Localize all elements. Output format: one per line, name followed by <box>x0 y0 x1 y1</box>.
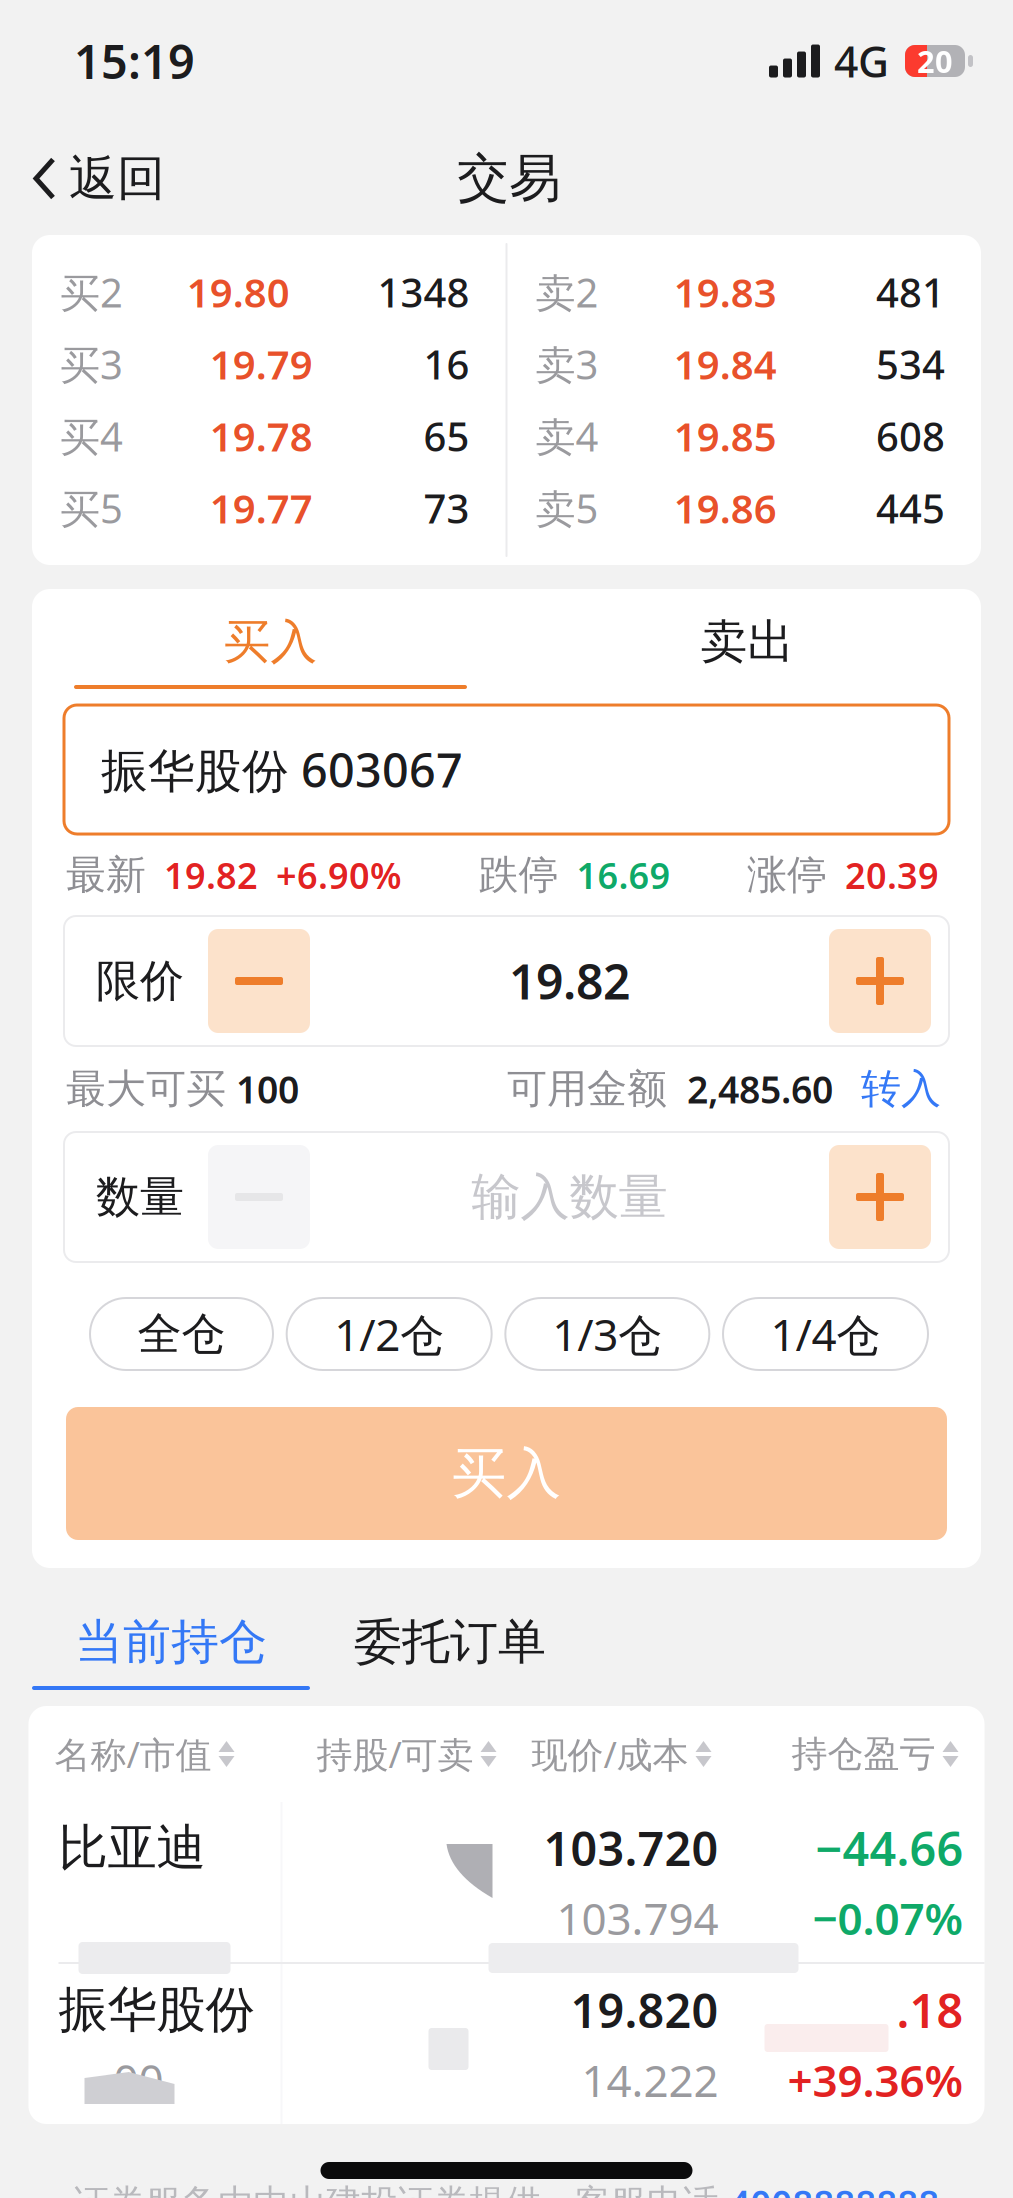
staticText: 103.794 <box>556 1889 718 1947</box>
staticText: 19.84 <box>674 337 777 390</box>
staticText: 20.39 <box>827 851 939 899</box>
staticText: 19.79 <box>210 337 313 390</box>
staticText: 481 <box>876 265 945 318</box>
staticText: +39.36% <box>787 2051 963 2109</box>
button[interactable]: 买入 <box>54 613 487 689</box>
staticText: 4G <box>834 33 889 89</box>
staticText: 20 <box>917 41 953 81</box>
staticText: 卖4 <box>535 409 598 462</box>
button[interactable]: 转入 <box>833 1064 941 1113</box>
staticText <box>501 1889 512 1947</box>
staticText: 100 <box>226 1064 299 1114</box>
staticText: 103.720 <box>543 1817 718 1879</box>
staticText: 19.86 <box>674 481 777 534</box>
staticText: 4008888888 <box>729 2179 939 2198</box>
staticText: 608 <box>876 409 945 462</box>
staticText: 1348 <box>377 265 469 318</box>
button[interactable]: 1/4仓 <box>723 1298 928 1370</box>
staticText: 19.83 <box>674 265 777 318</box>
staticText: 73 <box>423 481 469 534</box>
staticText: 输入数量 <box>471 1167 667 1227</box>
staticText: 卖2 <box>535 265 598 318</box>
staticText: 可用金额 <box>507 1064 667 1113</box>
staticText: 00 <box>113 2050 163 2108</box>
staticText: 19.85 <box>674 409 777 462</box>
staticText: 买4 <box>60 409 123 462</box>
staticText: 数量 <box>96 1170 184 1224</box>
staticText: 19.78 <box>210 409 313 462</box>
staticText: 14.222 <box>581 2051 718 2109</box>
staticText: 19.80 <box>187 265 290 318</box>
staticText: 最新 <box>66 850 146 899</box>
staticText: 16 <box>423 337 469 390</box>
staticText: 证券服务由中山建投证券提供 客服电话 <box>73 2181 729 2198</box>
staticText: 1/2仓 <box>334 1305 444 1363</box>
staticText: 买5 <box>60 481 123 534</box>
staticText: 持仓盈亏 <box>791 1732 935 1776</box>
staticText: 19.82 <box>509 949 630 1013</box>
staticText: 买入 <box>223 613 317 671</box>
button[interactable]: 振华股份 603067 <box>64 705 949 834</box>
button[interactable]: 提高限价 <box>829 929 931 1033</box>
button[interactable]: 委托订单 <box>350 1612 550 1690</box>
staticText: +6.90% <box>258 851 402 899</box>
button[interactable]: 1/2仓 <box>287 1298 492 1370</box>
staticText: 卖出 <box>700 613 794 671</box>
button[interactable]: 返回 <box>22 135 175 221</box>
staticText: 交易 <box>457 147 561 210</box>
button[interactable]: 持仓盈亏 <box>791 1732 958 1776</box>
staticText: 2,485.60 <box>667 1064 833 1114</box>
staticText: 65 <box>423 409 469 462</box>
button[interactable]: 买入 <box>66 1407 947 1540</box>
staticText: 持股/可卖 <box>316 1730 473 1778</box>
staticText: 转入 <box>861 1064 941 1113</box>
staticText: 限价 <box>96 954 184 1008</box>
staticText: 534 <box>876 337 945 390</box>
staticText: 涨停 <box>747 850 827 899</box>
staticText: 19.77 <box>210 481 313 534</box>
staticText: 比亚迪 <box>58 1817 205 1878</box>
staticText: 返回 <box>69 149 165 208</box>
button[interactable]: 比亚迪 <box>28 1802 984 1962</box>
staticText: 当前持仓 <box>75 1612 267 1671</box>
staticText: 19.82 <box>146 851 258 899</box>
staticText: 委托订单 <box>354 1612 546 1671</box>
staticText: 445 <box>876 481 945 534</box>
staticText: 全仓 <box>137 1307 225 1361</box>
button[interactable]: 名称/市值 <box>54 1730 234 1778</box>
button[interactable]: 卖出 <box>518 613 951 689</box>
button[interactable]: 持股/可卖 <box>316 1730 496 1778</box>
staticText: 15:19 <box>74 30 195 92</box>
staticText: .18 <box>896 1979 963 2041</box>
staticText: −0.07% <box>812 1889 963 1947</box>
staticText: 跌停 <box>478 850 558 899</box>
staticText: 卖5 <box>535 481 598 534</box>
staticText: 19.820 <box>570 1979 718 2041</box>
staticText: 1/3仓 <box>552 1305 662 1363</box>
staticText: 买3 <box>60 337 123 390</box>
button[interactable]: 1/3仓 <box>505 1298 709 1370</box>
staticText: 卖3 <box>535 337 598 390</box>
button[interactable]: 当前持仓 <box>32 1612 310 1690</box>
staticText: 名称/市值 <box>54 1730 211 1778</box>
button[interactable]: 增加数量 <box>829 1145 931 1249</box>
button[interactable]: 振华股份 <box>28 1964 984 2124</box>
staticText: 最大可买 <box>66 1064 226 1113</box>
staticText: −44.66 <box>815 1817 963 1879</box>
staticText: 振华股份 <box>58 1979 254 2040</box>
staticText: 16.69 <box>558 851 670 899</box>
staticText: 振华股份 603067 <box>101 738 463 800</box>
button[interactable]: 现价/成本 <box>531 1730 711 1778</box>
button[interactable]: 降低限价 <box>208 929 310 1033</box>
button[interactable]: 全仓 <box>90 1298 273 1370</box>
staticText: 现价/成本 <box>531 1730 688 1778</box>
staticText: 买2 <box>60 265 123 318</box>
staticText: 买入 <box>451 1440 561 1507</box>
staticText: 1/4仓 <box>770 1305 880 1363</box>
